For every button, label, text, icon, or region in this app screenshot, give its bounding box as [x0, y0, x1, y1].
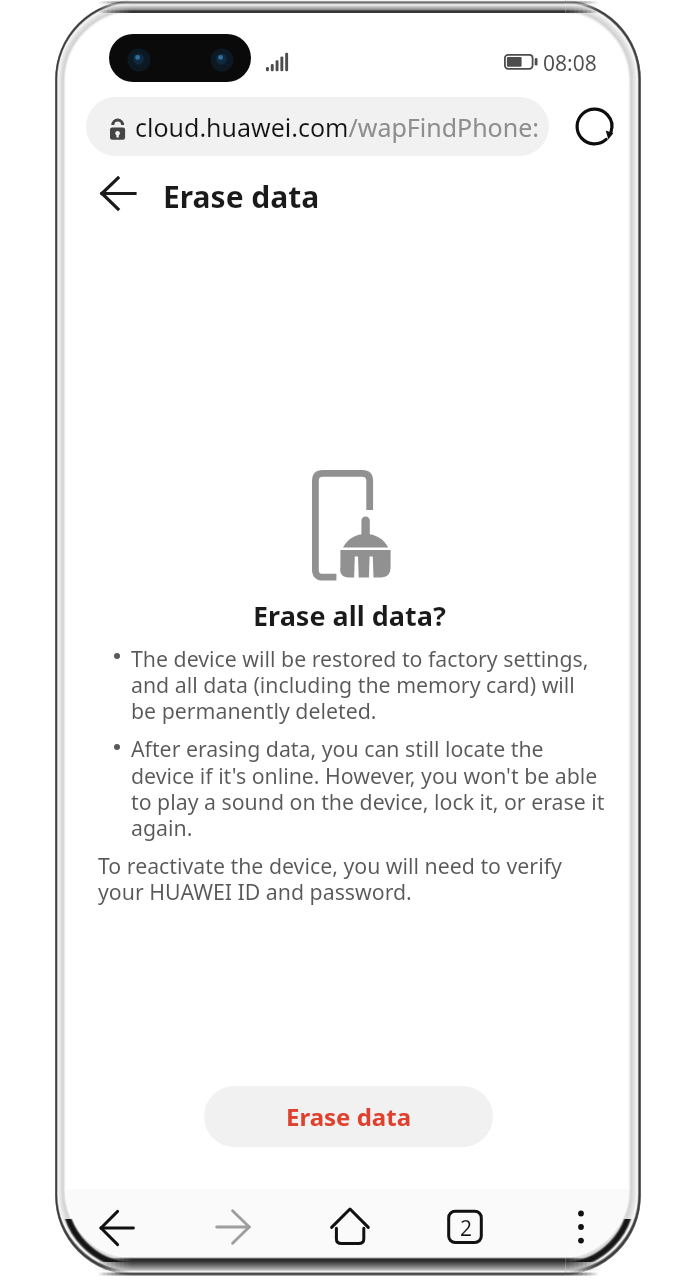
button[interactable]: cloud.huawei.com/wapFindPhone:: [86, 97, 549, 156]
button[interactable]: More options: [552, 1198, 610, 1256]
staticText: The device will be restored to factory s…: [131, 644, 589, 673]
button[interactable]: Back: [88, 1199, 146, 1257]
staticText: your HUAWEI ID and password.: [98, 877, 412, 906]
staticText: Erase data: [286, 1100, 412, 1133]
button[interactable]: Refresh: [570, 102, 619, 151]
staticText: 08:08: [543, 49, 597, 78]
staticText: 2: [460, 1214, 473, 1243]
button[interactable]: Tabs: [436, 1198, 494, 1256]
button[interactable]: Erase data: [204, 1086, 493, 1147]
staticText: cloud.huawei.com/wapFindPhone:: [135, 110, 539, 144]
staticText: device if it's online. However, you won'…: [131, 761, 598, 790]
button[interactable]: Forward: [204, 1198, 262, 1256]
staticText: To reactivate the device, you will need …: [98, 851, 562, 880]
button[interactable]: Home: [321, 1197, 379, 1255]
button[interactable]: Back: [92, 171, 138, 217]
staticText: After erasing data, you can still locate…: [131, 734, 544, 763]
staticText: Erase data: [163, 176, 320, 217]
staticText: to play a sound on the device, lock it, …: [131, 787, 605, 816]
staticText: be permanently deleted.: [131, 696, 377, 725]
staticText: and all data (including the memory card)…: [131, 670, 575, 699]
staticText: Erase all data?: [253, 597, 446, 634]
staticText: again.: [131, 813, 193, 842]
